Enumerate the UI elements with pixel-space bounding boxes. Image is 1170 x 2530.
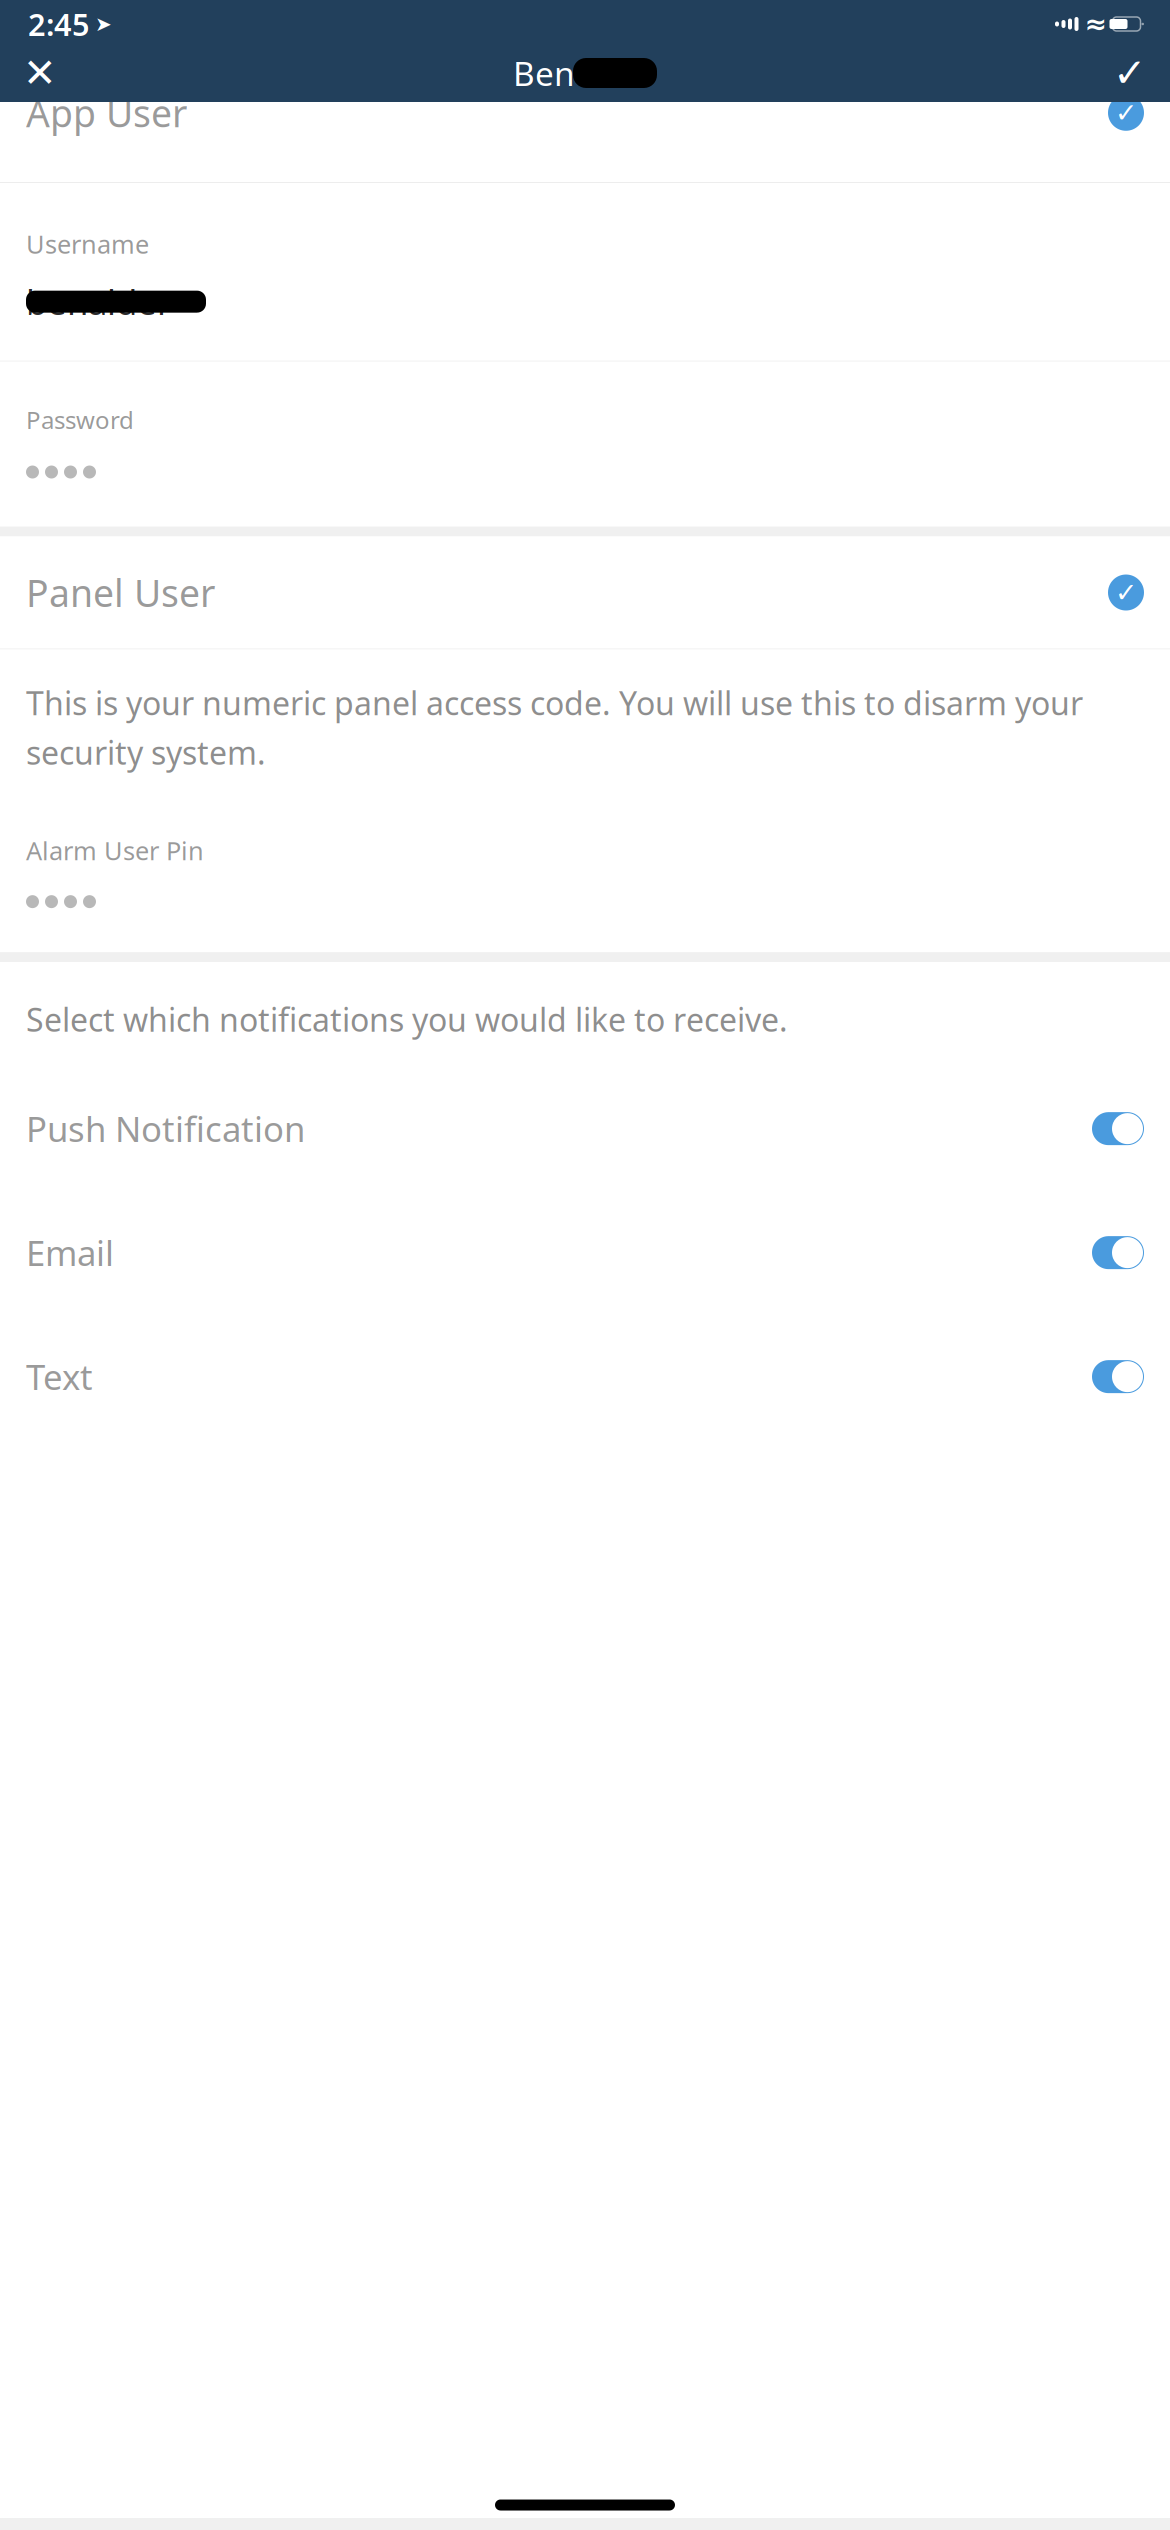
button[interactable]: Email (0, 1191, 1170, 1315)
staticText: ≈ (1084, 9, 1106, 39)
staticText: ✓ (1115, 577, 1137, 608)
staticText: Push Notification (26, 1106, 305, 1152)
staticText: Select which notifications you would lik… (26, 998, 788, 1041)
staticText: ✓ (1115, 98, 1137, 128)
staticText: benalder (26, 279, 171, 325)
staticText: Email (26, 1230, 114, 1276)
staticText: Ben (513, 51, 575, 95)
staticText: ✕ (23, 50, 57, 96)
button[interactable]: Close (12, 48, 68, 98)
staticText: ✓ (1113, 50, 1147, 96)
button[interactable]: Save (1102, 48, 1158, 98)
staticText: Panel User (26, 568, 215, 617)
button[interactable]: Panel User (0, 536, 1170, 648)
staticText: ➤ (95, 13, 112, 35)
button[interactable]: Push Notification (0, 1067, 1170, 1191)
staticText: This is your numeric panel access code. … (26, 681, 1083, 773)
staticText: Password (26, 404, 134, 435)
button[interactable]: Text (0, 1315, 1170, 1439)
staticText: App User (26, 88, 187, 138)
staticText: Username (26, 227, 149, 261)
staticText: Alarm User Pin (26, 833, 204, 867)
staticText: 2:45 (28, 4, 90, 44)
button[interactable]: App User (0, 102, 1170, 154)
staticText: Text (26, 1354, 93, 1400)
